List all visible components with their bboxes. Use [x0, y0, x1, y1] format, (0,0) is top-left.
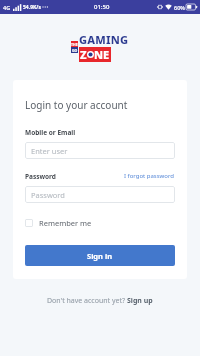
button[interactable]: Password [25, 186, 175, 203]
staticText: Remember me [39, 218, 92, 228]
button[interactable]: Remember me [25, 217, 92, 229]
staticText: GAMING [79, 32, 129, 47]
staticText: THE [71, 42, 78, 47]
staticText: Enter user [31, 146, 68, 156]
staticText: 54.9K/s [23, 4, 41, 11]
staticText: Password [25, 172, 56, 181]
staticText: I forgot password [124, 172, 174, 180]
staticText: Sign in [87, 251, 113, 261]
staticText: Password [31, 190, 65, 200]
staticText: 60% [174, 4, 185, 11]
staticText: Mobile or Email [25, 128, 76, 137]
button[interactable]: Sign up [126, 295, 154, 307]
staticText: 4G [3, 4, 11, 11]
staticText: Sign up [127, 296, 153, 306]
staticText: 01:50 [94, 3, 110, 11]
button[interactable]: I forgot password [123, 171, 175, 181]
button[interactable]: Sign in [25, 245, 175, 266]
staticText: NE [94, 47, 110, 62]
staticText: Don't have account yet? [46, 296, 126, 306]
staticText: Z [80, 47, 87, 62]
staticText: Login to your account [25, 98, 128, 112]
button[interactable]: Enter user [25, 142, 175, 159]
staticText: GO [72, 48, 78, 53]
